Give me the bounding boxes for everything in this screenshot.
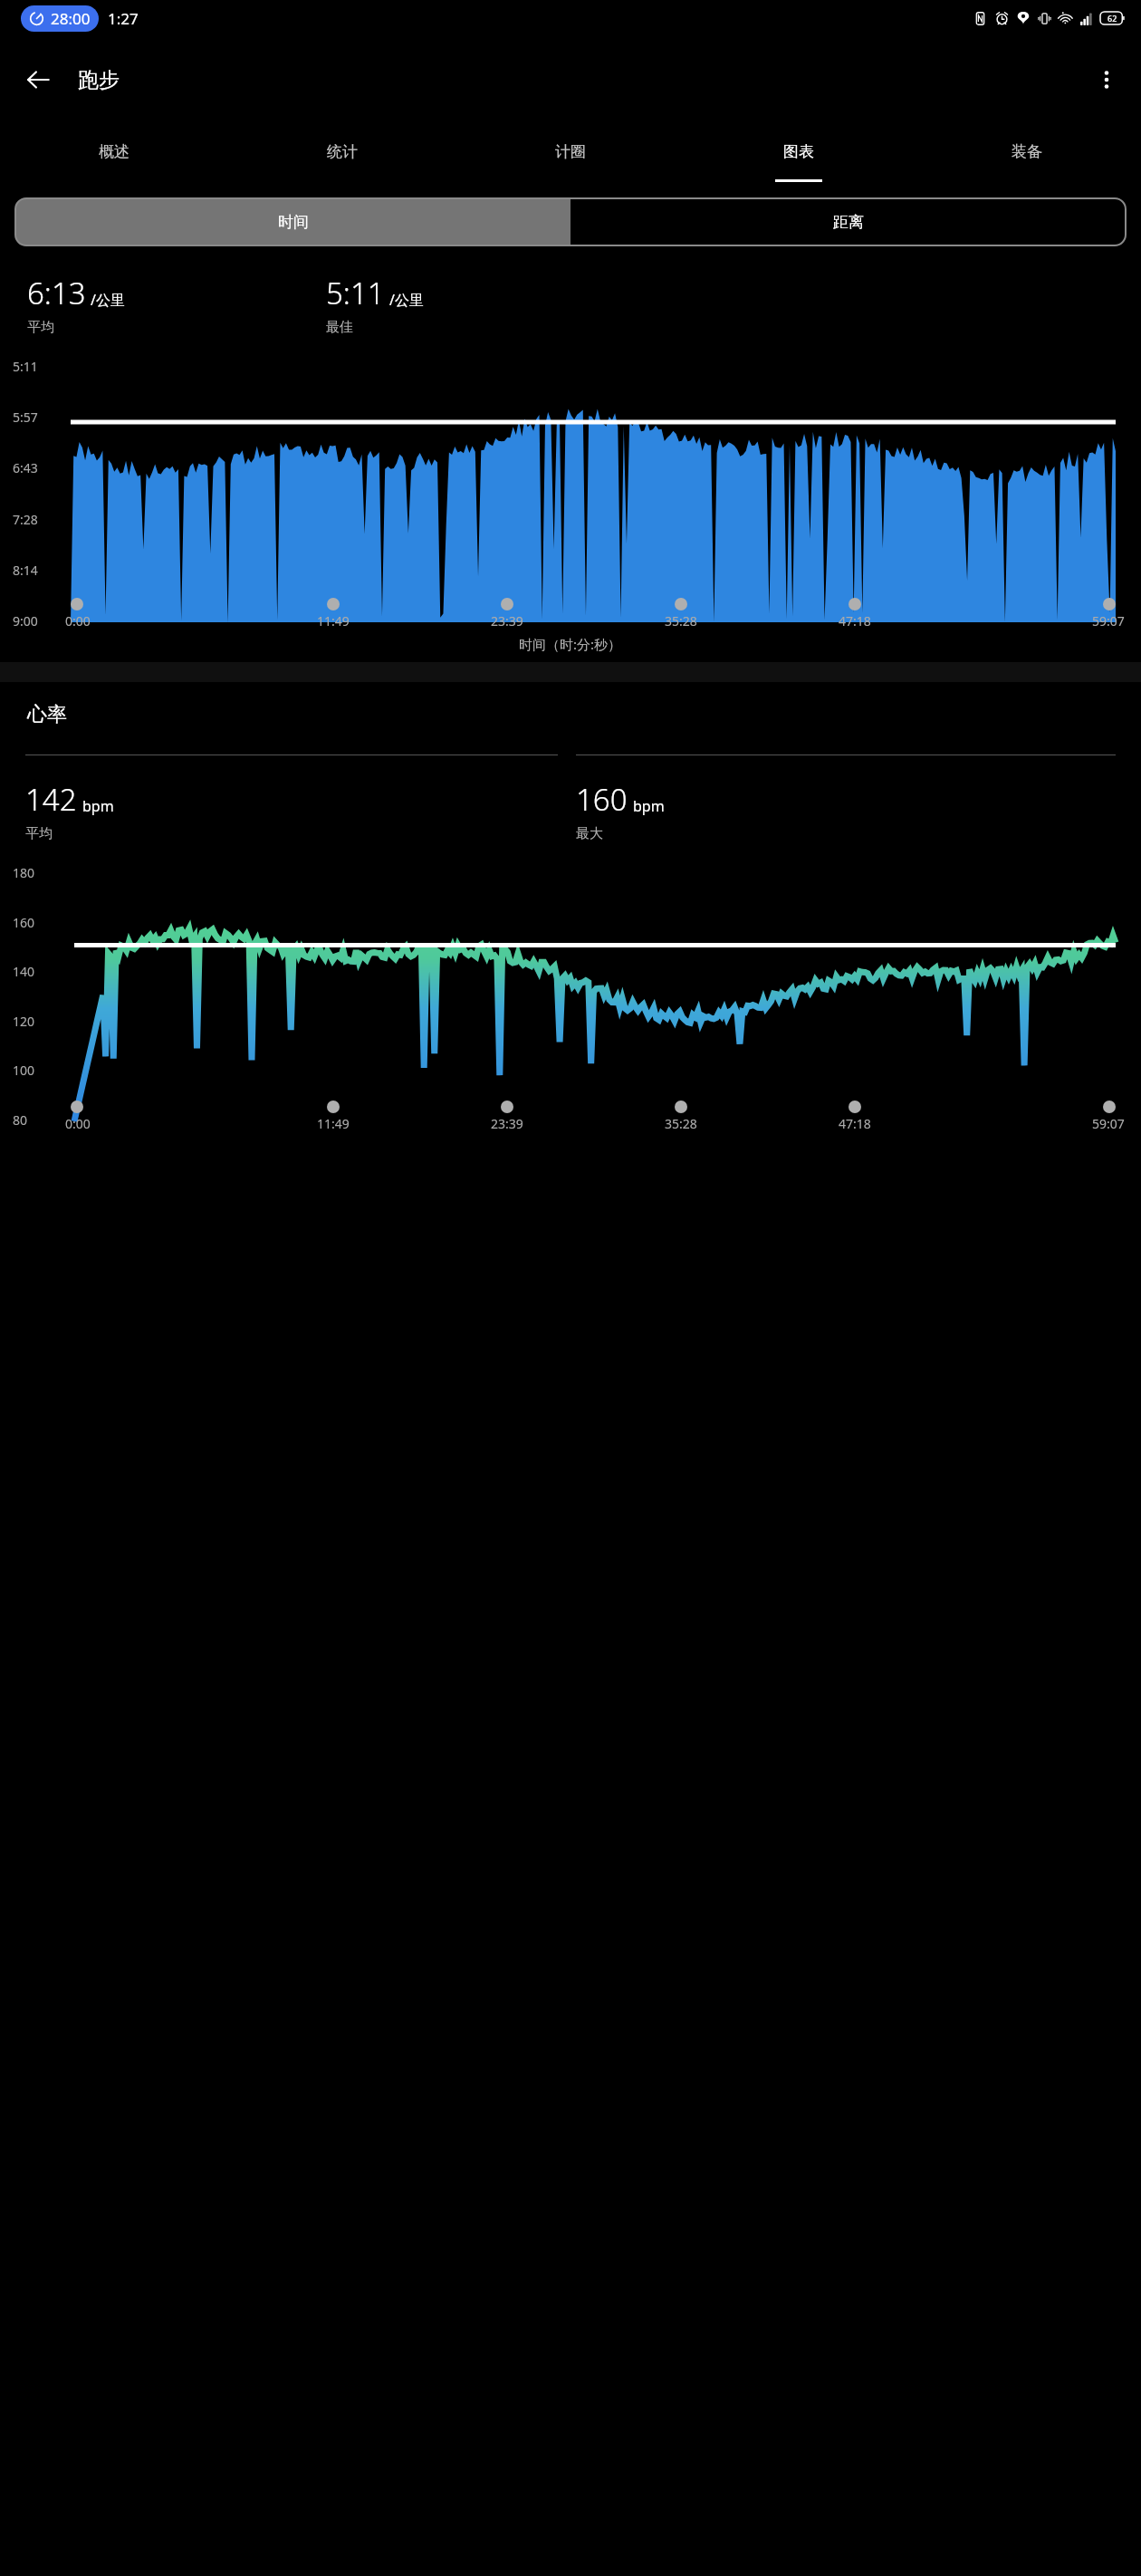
staticText: 概述 [99, 142, 129, 161]
staticText: 6:13 [27, 273, 86, 313]
staticText: 时间（时:分:秒） [519, 635, 622, 653]
staticText: 0:00 [65, 612, 91, 630]
staticText: 23:39 [491, 612, 523, 630]
staticText: /公里 [389, 290, 424, 310]
staticText: 62 [1107, 13, 1117, 24]
staticText: 11:49 [317, 612, 350, 630]
staticText: 180 [13, 864, 35, 881]
button[interactable]: 图表 [685, 123, 913, 179]
staticText: 120 [13, 1013, 35, 1030]
staticText: 8:14 [13, 562, 38, 579]
staticText: 23:39 [491, 1115, 523, 1132]
button[interactable]: 概述 [0, 123, 228, 179]
button[interactable]: 装备 [913, 123, 1141, 179]
staticText: 35:28 [665, 1115, 697, 1132]
staticText: 100 [13, 1062, 35, 1079]
staticText: 11:49 [317, 1115, 350, 1132]
staticText: 装备 [1012, 142, 1042, 161]
button[interactable]: 统计 [228, 123, 456, 179]
staticText: 35:28 [665, 612, 697, 630]
staticText: 160 [13, 914, 35, 931]
staticText: 统计 [327, 142, 358, 161]
staticText: 跑步 [78, 67, 120, 93]
staticText: 时间 [278, 213, 309, 232]
staticText: 59:07 [1092, 1115, 1125, 1132]
staticText: 最佳 [326, 319, 353, 336]
staticText: 0:00 [65, 1115, 91, 1132]
staticText: bpm [633, 796, 665, 816]
button[interactable]: 距离 [570, 198, 1126, 245]
staticText: 心率 [27, 702, 67, 727]
staticText: /公里 [91, 290, 125, 310]
staticText: 图表 [783, 142, 814, 161]
staticText: 47:18 [839, 1115, 871, 1132]
staticText: 7:28 [13, 511, 38, 528]
staticText: 47:18 [839, 612, 871, 630]
button[interactable]: 28:00 [21, 5, 99, 32]
staticText: 最大 [576, 825, 603, 842]
button[interactable]: Back [13, 54, 63, 105]
staticText: 5:11 [326, 273, 385, 313]
staticText: bpm [82, 796, 114, 816]
staticText: 平均 [25, 825, 53, 842]
staticText: 140 [13, 963, 35, 980]
staticText: 59:07 [1092, 612, 1125, 630]
button[interactable]: More options [1083, 56, 1130, 103]
staticText: 9:00 [13, 612, 38, 630]
staticText: 160 [576, 779, 628, 820]
staticText: 28:00 [51, 8, 91, 29]
staticText: 80 [13, 1111, 28, 1129]
staticText: 计圈 [555, 142, 586, 161]
button[interactable]: 计圈 [456, 123, 685, 179]
staticText: 1:27 [108, 8, 139, 29]
staticText: 距离 [833, 213, 864, 232]
staticText: 6:43 [13, 459, 38, 476]
staticText: 142 [25, 779, 77, 820]
staticText: 5:11 [13, 358, 38, 375]
button[interactable]: 时间 [15, 198, 570, 245]
staticText: 平均 [27, 319, 54, 336]
staticText: 5:57 [13, 409, 38, 426]
